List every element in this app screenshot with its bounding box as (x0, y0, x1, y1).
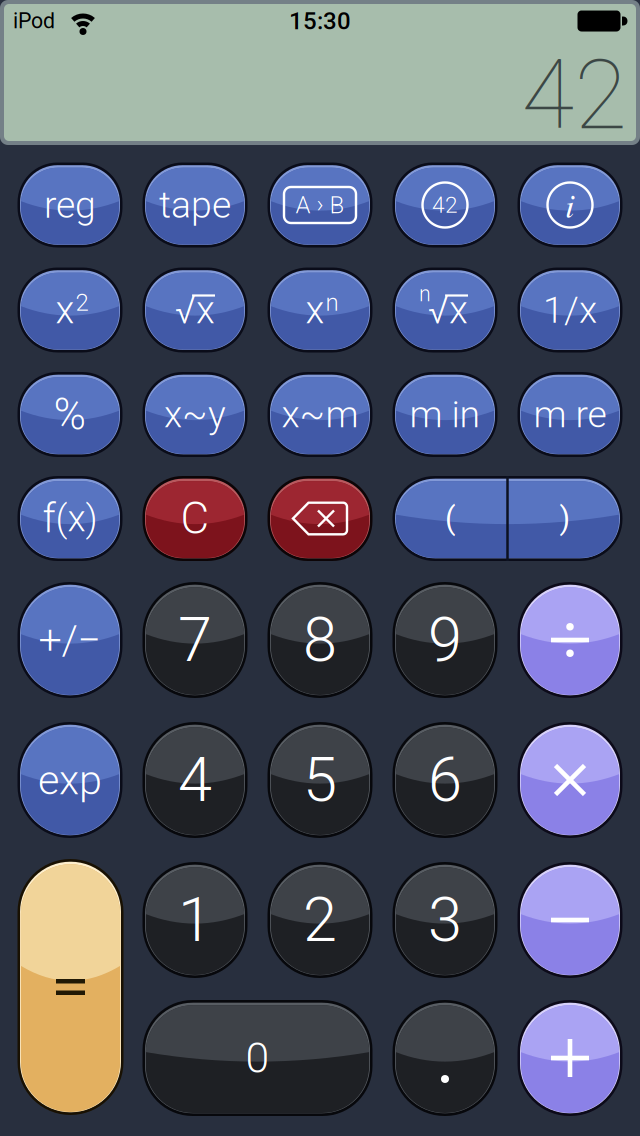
staticText: x (55, 287, 74, 333)
staticText: A (295, 191, 310, 219)
staticText: x~m (281, 393, 358, 436)
staticText: m re (533, 393, 606, 436)
staticText: B (329, 191, 344, 219)
button[interactable]: 3 (392, 862, 497, 978)
staticText: 1/x (543, 288, 597, 332)
button[interactable]: 4 (142, 722, 247, 838)
staticText: √x (428, 287, 468, 333)
staticText: ( (445, 500, 455, 536)
staticText: n (419, 281, 431, 306)
button[interactable]: Decimal point (392, 1000, 497, 1116)
staticText: 1 (178, 884, 212, 956)
button[interactable]: Convert (267, 162, 372, 247)
button[interactable]: Delete (267, 476, 372, 561)
button[interactable]: Divide (517, 582, 622, 698)
staticText: x (305, 287, 324, 333)
button[interactable]: 0 (142, 1000, 372, 1116)
staticText: 6 (428, 744, 462, 816)
staticText: √x (175, 287, 215, 333)
button[interactable]: f (17, 476, 122, 561)
button[interactable]: exp (17, 722, 122, 838)
staticText: m in (409, 393, 480, 436)
staticText: 9 (428, 604, 462, 676)
staticText: tape (159, 183, 231, 227)
staticText: 42 (521, 39, 627, 152)
button[interactable]: Subtract (517, 862, 622, 978)
button[interactable]: 8 (267, 582, 372, 698)
button[interactable]: ( (392, 476, 507, 561)
button[interactable]: m in (392, 372, 497, 457)
button[interactable]: x~y (142, 372, 247, 457)
staticText: 42 (432, 192, 458, 218)
button[interactable]: Multiply (517, 722, 622, 838)
staticText: › (316, 190, 323, 218)
staticText: % (53, 389, 86, 440)
staticText: f (42, 495, 55, 542)
button[interactable]: Constants (392, 162, 497, 247)
button[interactable]: 1/x (517, 267, 622, 352)
staticText: n (325, 288, 338, 316)
staticText: +/− (38, 616, 101, 664)
staticText: 2 (75, 288, 88, 316)
staticText: 3 (428, 884, 462, 956)
staticText: 8 (303, 604, 337, 676)
button[interactable]: m re (517, 372, 622, 457)
button[interactable]: C (142, 476, 247, 561)
button[interactable]: Add (517, 1000, 622, 1116)
staticText: 15:30 (289, 7, 351, 35)
button[interactable]: x (17, 267, 122, 352)
button[interactable]: ) (507, 476, 622, 561)
staticText: 0 (245, 1033, 269, 1083)
staticText: ) (559, 500, 570, 536)
staticText: exp (38, 756, 102, 804)
button[interactable]: 5 (267, 722, 372, 838)
button[interactable]: x~m (267, 372, 372, 457)
staticText: reg (44, 183, 96, 227)
staticText: 5 (303, 744, 337, 816)
staticText: (x) (55, 497, 97, 540)
button[interactable]: √x (392, 267, 497, 352)
button[interactable]: 7 (142, 582, 247, 698)
button[interactable]: 1 (142, 862, 247, 978)
button[interactable]: Equals (17, 859, 123, 1115)
button[interactable]: 2 (267, 862, 372, 978)
staticText: 4 (178, 744, 212, 816)
staticText: 2 (303, 884, 337, 956)
staticText: 7 (178, 604, 212, 676)
button[interactable]: 9 (392, 582, 497, 698)
button[interactable]: √x (142, 267, 247, 352)
button[interactable]: 6 (392, 722, 497, 838)
staticText: i (565, 181, 575, 227)
staticText: iPod (13, 8, 55, 33)
staticText: x~y (164, 393, 226, 436)
button[interactable]: x (267, 267, 372, 352)
button[interactable]: % (17, 372, 122, 457)
staticText: C (180, 493, 209, 544)
button[interactable]: tape (142, 162, 247, 247)
button[interactable]: Info (517, 162, 622, 247)
button[interactable]: reg (17, 162, 122, 247)
button[interactable]: +/− (17, 582, 122, 698)
